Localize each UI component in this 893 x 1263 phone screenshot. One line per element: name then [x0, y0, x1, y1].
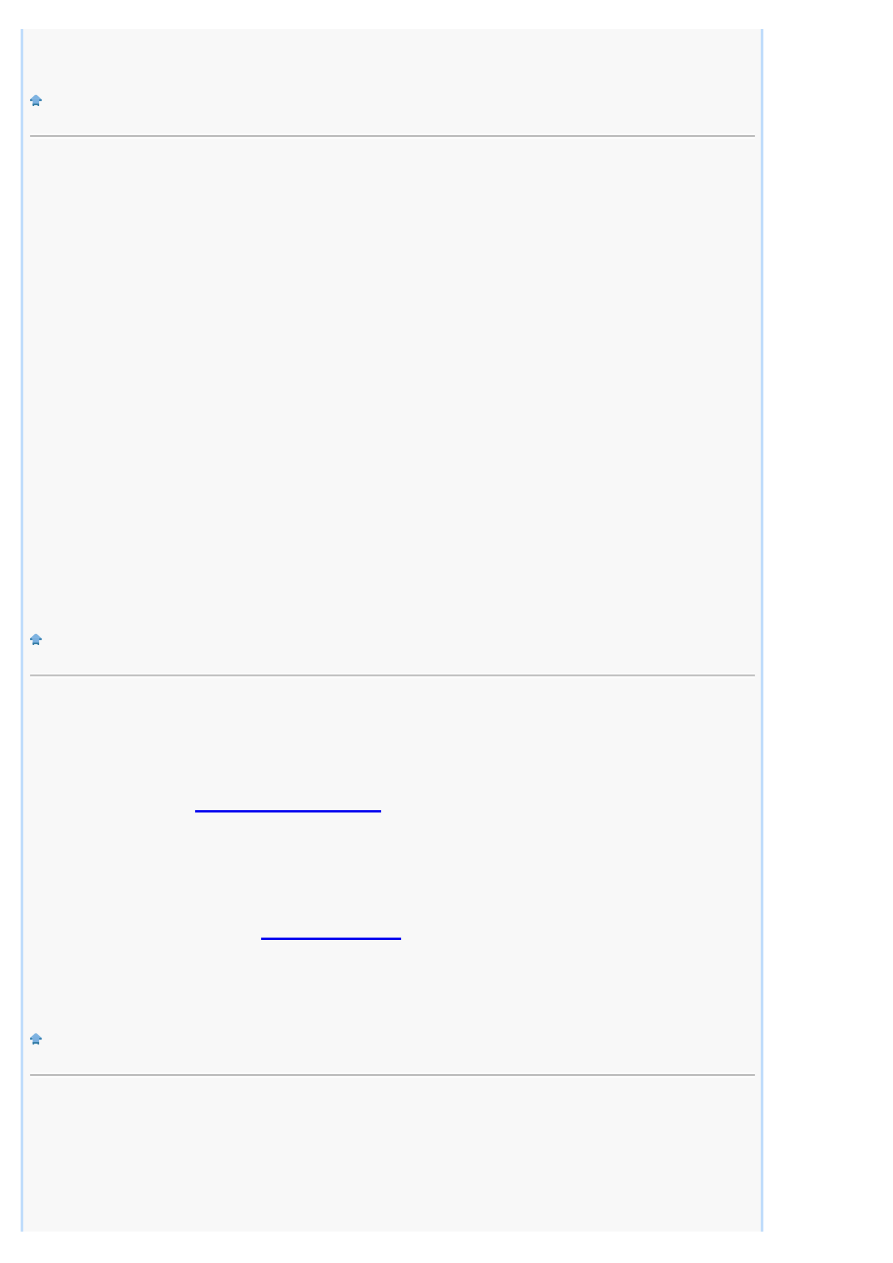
button[interactable]: Home: [30, 1033, 755, 1044]
button[interactable]: Second link: [261, 924, 401, 941]
button[interactable]: First link: [195, 796, 381, 813]
button[interactable]: Home: [30, 633, 755, 645]
button[interactable]: Home: [30, 94, 755, 106]
